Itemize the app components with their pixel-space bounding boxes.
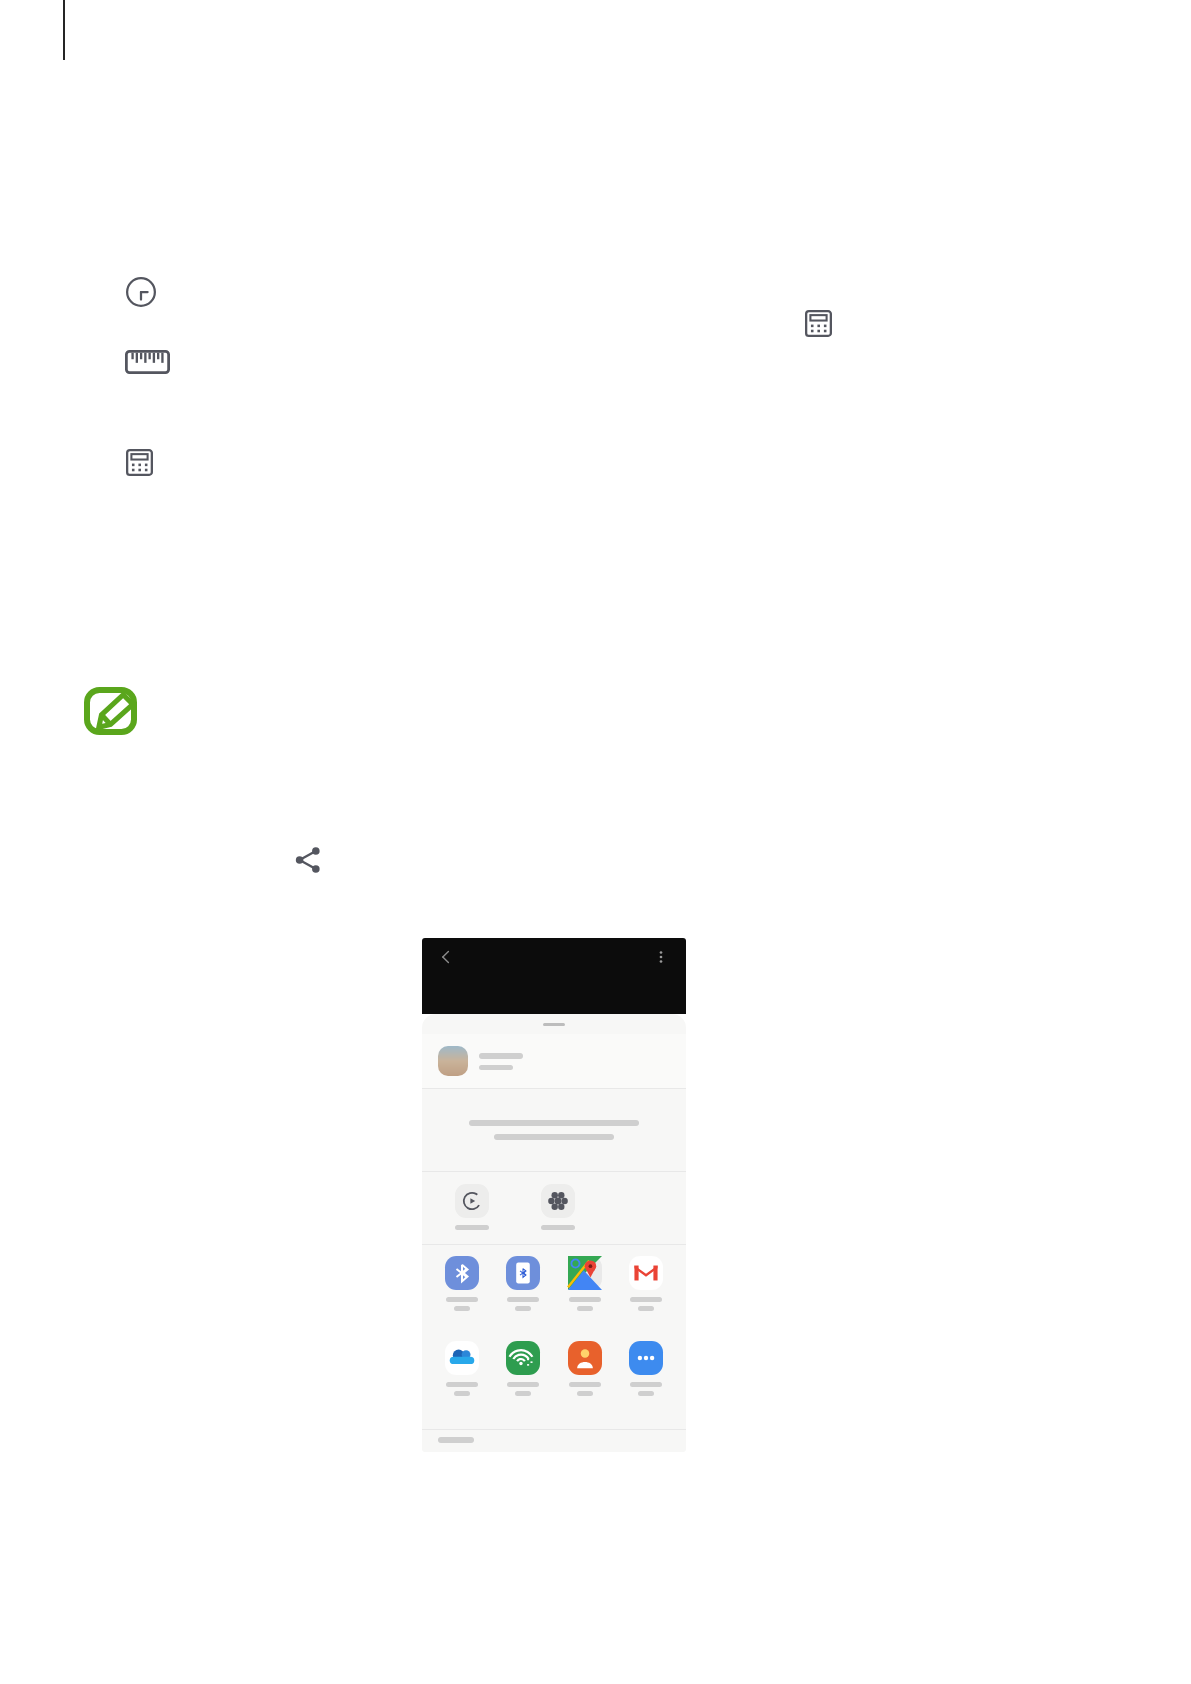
button[interactable]: Back [436,947,456,967]
button[interactable] [444,1184,500,1230]
button[interactable] [559,1341,611,1396]
button[interactable] [422,1034,686,1088]
button[interactable] [436,1341,488,1396]
button[interactable]: Clock [126,277,156,307]
button[interactable]: Samsung Notes [84,687,137,735]
button[interactable]: Share [294,846,322,874]
button[interactable] [620,1341,672,1396]
button[interactable] [559,1256,611,1311]
button[interactable] [620,1256,672,1311]
button[interactable] [530,1184,586,1230]
button[interactable]: Calculator [126,449,153,476]
button[interactable]: Calculator [805,310,832,337]
button[interactable]: Ruler [125,350,170,374]
button[interactable] [497,1256,549,1311]
button[interactable]: More options [652,948,670,966]
button[interactable] [497,1341,549,1396]
button[interactable] [436,1256,488,1311]
